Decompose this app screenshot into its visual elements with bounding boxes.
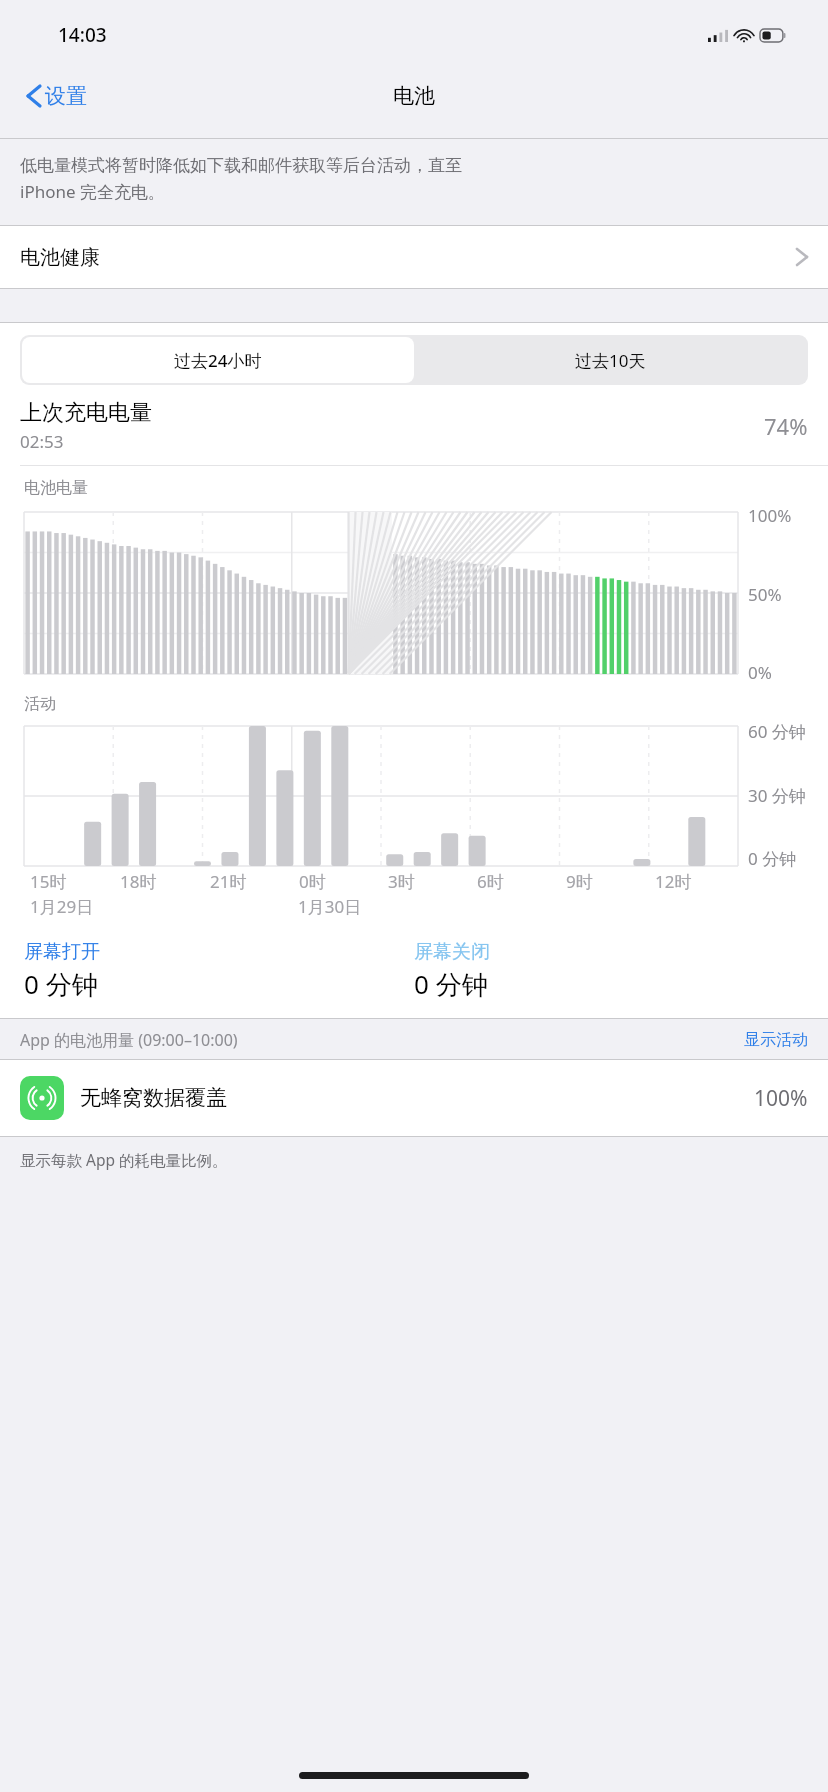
staticText: 18时 bbox=[120, 870, 157, 893]
staticText: 活动 bbox=[24, 694, 56, 714]
staticText: 低电量模式将暂时降低如下载和邮件获取等后台活动，直至 iPhone 完全充电。 bbox=[20, 155, 462, 203]
staticText: 无蜂窝数据覆盖 bbox=[80, 1085, 227, 1111]
button[interactable]: 设置 bbox=[20, 77, 93, 115]
staticText: 0% bbox=[748, 661, 772, 684]
staticText: 74% bbox=[764, 411, 808, 441]
staticText: 1月29日 bbox=[30, 895, 94, 918]
staticText: 14:03 bbox=[58, 22, 107, 48]
staticText: 100% bbox=[748, 504, 792, 527]
staticText: 100% bbox=[754, 1084, 808, 1113]
staticText: 电池电量 bbox=[24, 478, 88, 498]
staticText: 电池健康 bbox=[20, 245, 100, 270]
staticText: App 的电池用量 (09:00–10:00) bbox=[20, 1029, 238, 1051]
staticText: 过去24小时 bbox=[174, 349, 262, 372]
staticText: 设置 bbox=[45, 83, 87, 109]
staticText: 1月30日 bbox=[298, 895, 362, 918]
staticText: 30 分钟 bbox=[748, 784, 806, 807]
staticText: 上次充电电量 bbox=[20, 399, 152, 427]
staticText: 屏幕打开 bbox=[24, 940, 100, 964]
staticText: 显示活动 bbox=[744, 1030, 808, 1050]
staticText: 12时 bbox=[655, 870, 692, 893]
button[interactable]: 过去10天 bbox=[414, 337, 806, 383]
button[interactable]: 电池健康 bbox=[0, 226, 828, 288]
staticText: 显示每款 App 的耗电量比例。 bbox=[20, 1149, 228, 1170]
staticText: 0时 bbox=[299, 870, 326, 893]
staticText: 0 分钟 bbox=[24, 966, 98, 1002]
staticText: 15时 bbox=[30, 870, 67, 893]
staticText: 6时 bbox=[477, 870, 504, 893]
staticText: 60 分钟 bbox=[748, 720, 806, 743]
staticText: 21时 bbox=[210, 870, 247, 893]
staticText: 0 分钟 bbox=[414, 966, 488, 1002]
staticText: 3时 bbox=[388, 870, 415, 893]
staticText: 电池 bbox=[393, 83, 435, 109]
button[interactable]: 显示活动 bbox=[744, 1030, 808, 1050]
staticText: 9时 bbox=[566, 870, 593, 893]
staticText: 50% bbox=[748, 583, 782, 606]
staticText: 屏幕关闭 bbox=[414, 940, 490, 964]
button[interactable]: 过去24小时 bbox=[22, 337, 414, 383]
button[interactable]: 无蜂窝数据覆盖 bbox=[0, 1060, 828, 1136]
staticText: 02:53 bbox=[20, 430, 64, 453]
staticText: 0 分钟 bbox=[748, 847, 797, 870]
staticText: 过去10天 bbox=[575, 349, 646, 372]
